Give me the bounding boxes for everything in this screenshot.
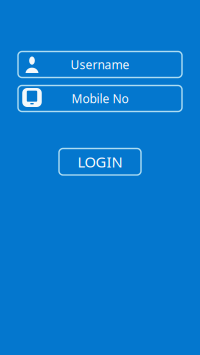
button[interactable]: Username: [18, 51, 182, 77]
staticText: LOGIN: [77, 152, 122, 171]
staticText: Username: [70, 56, 129, 72]
button[interactable]: Mobile No: [18, 85, 182, 111]
staticText: Mobile No: [71, 90, 128, 106]
button[interactable]: LOGIN: [59, 148, 141, 175]
